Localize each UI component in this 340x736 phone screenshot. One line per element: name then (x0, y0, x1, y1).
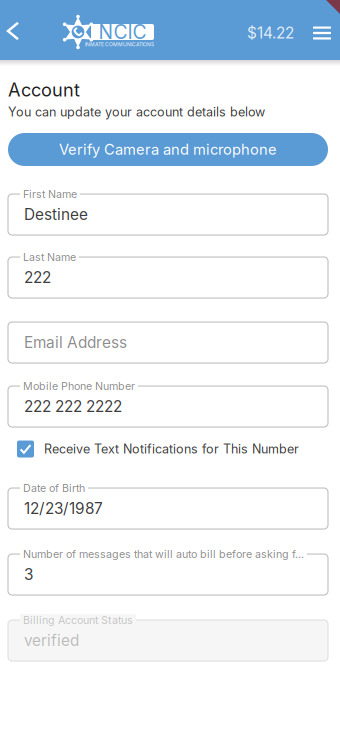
staticText: 222 222 2222 (24, 397, 122, 416)
button[interactable]: Verify Camera and microphone (8, 133, 328, 166)
staticText: Account (8, 79, 80, 101)
staticText: Mobile Phone Number (23, 379, 135, 392)
staticText: Last Name (23, 250, 76, 263)
button[interactable]: Receive Text Notifications for This Numb… (17, 438, 327, 460)
staticText: You can update your account details belo… (8, 104, 265, 120)
staticText: First Name (23, 187, 77, 200)
button[interactable]: Back (0, 7, 28, 55)
staticText: Receive Text Notifications for This Numb… (44, 441, 299, 457)
button[interactable]: Menu (305, 10, 339, 56)
staticText: Number of messages that will auto bill b… (23, 547, 304, 560)
staticText: 12/23/1987 (24, 499, 103, 518)
staticText: 222 (24, 268, 51, 287)
staticText: verified (24, 631, 79, 650)
staticText: 3 (24, 565, 33, 584)
staticText: Date of Birth (23, 481, 85, 494)
staticText: $14.22 (247, 24, 294, 42)
staticText: Destinee (24, 205, 88, 224)
staticText: INMATE COMMUNICATIONS (85, 41, 154, 47)
staticText: Verify Camera and microphone (59, 141, 277, 158)
staticText: NCIC (98, 20, 146, 44)
staticText: Email Address (24, 333, 127, 352)
staticText: Billing Account Status (23, 613, 133, 626)
